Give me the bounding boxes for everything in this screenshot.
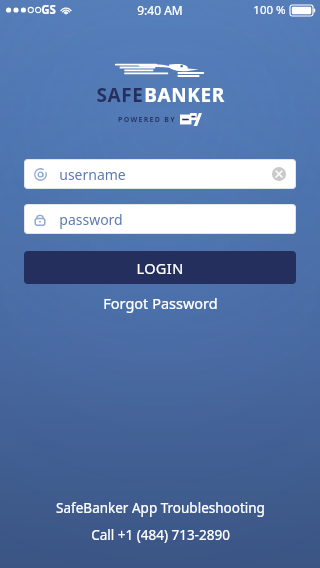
staticText: Call +1 (484) 713-2890 [91, 526, 230, 544]
button[interactable]: username [24, 159, 296, 189]
button[interactable]: LOGIN [24, 251, 296, 284]
staticText: Forgot Password [103, 293, 218, 313]
staticText: LOGIN [136, 258, 184, 278]
staticText: POWERED BY [118, 115, 176, 125]
button[interactable]: password [24, 204, 296, 234]
button[interactable]: Forgot Password [24, 293, 296, 313]
button[interactable]: Clear username [272, 167, 286, 181]
staticText: password [59, 210, 123, 229]
staticText: 9:40 AM [137, 2, 183, 18]
staticText: SafeBanker App Troubleshooting [56, 499, 265, 517]
staticText: username [59, 165, 126, 184]
staticText: SAFE [96, 82, 144, 108]
staticText: 100 % [253, 2, 286, 18]
staticText: GS [41, 2, 56, 18]
staticText: BANKER [144, 82, 225, 108]
